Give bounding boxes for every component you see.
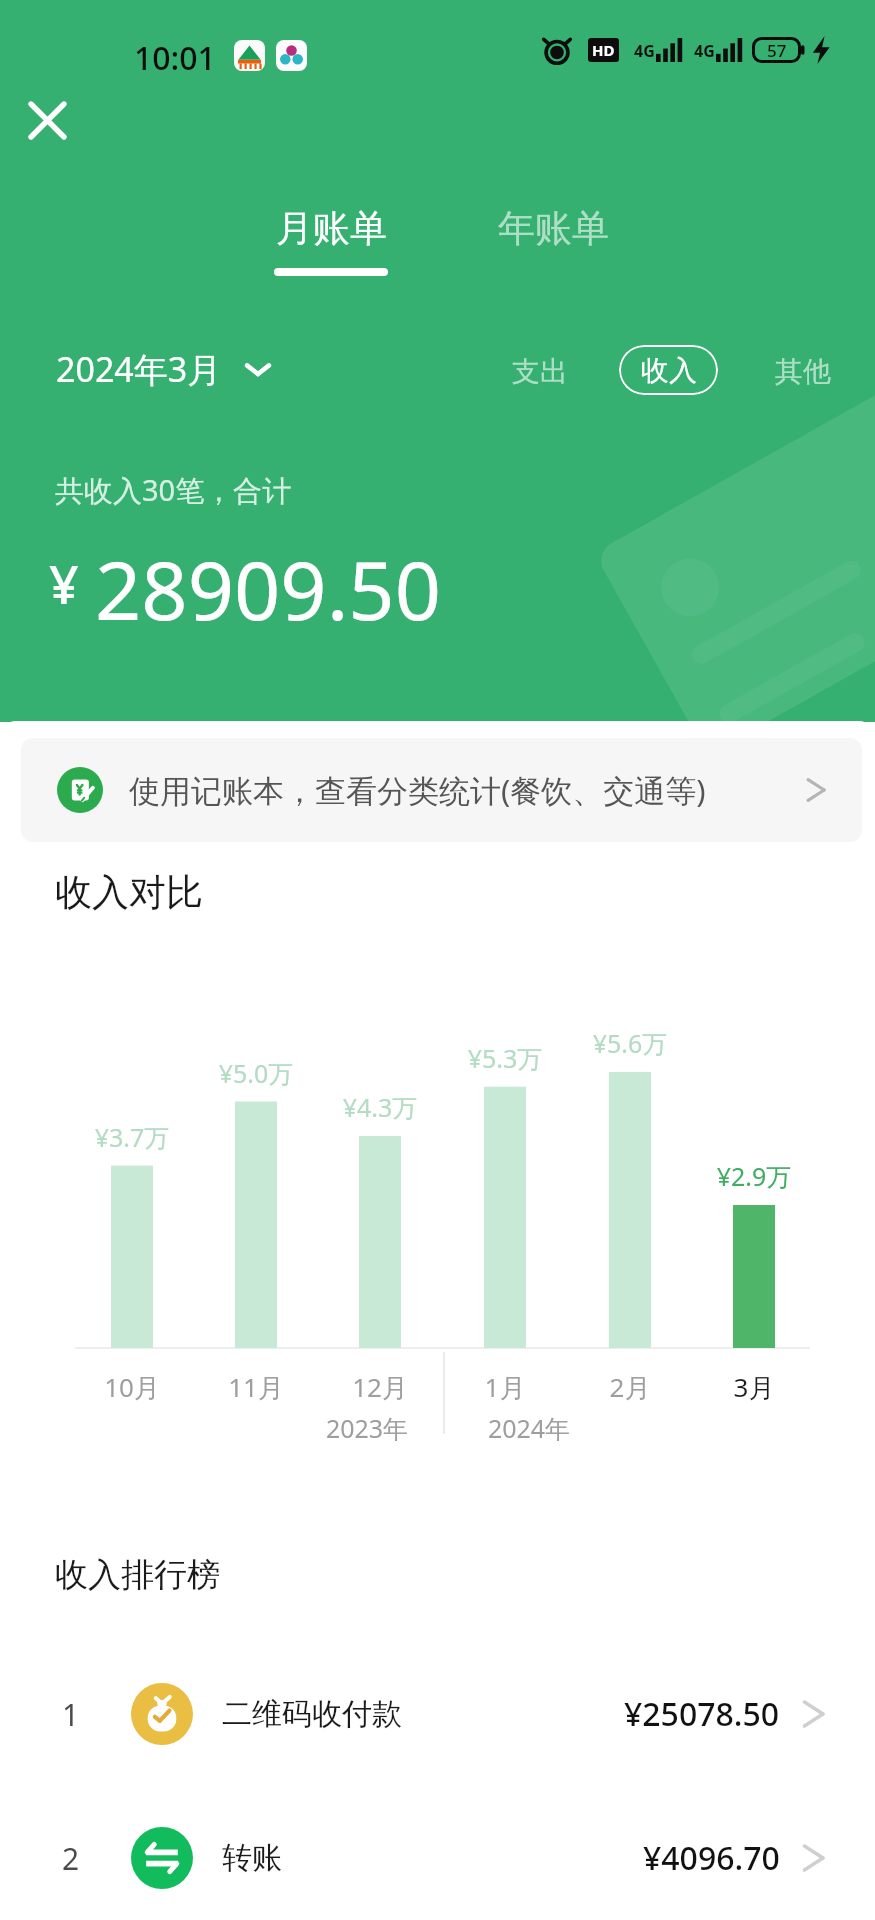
- button[interactable]: 收入: [619, 345, 718, 395]
- staticText: 转账: [222, 1839, 282, 1877]
- staticText: 收入排行榜: [55, 1554, 220, 1596]
- staticText: 支出: [512, 354, 568, 389]
- staticText: 收入: [641, 353, 697, 388]
- staticText: 1: [62, 1694, 80, 1735]
- staticText: 4G: [634, 40, 655, 62]
- staticText: ¥: [49, 548, 79, 619]
- button[interactable]: 月账单: [260, 195, 402, 286]
- staticText: 28909.50: [95, 533, 442, 643]
- staticText: 2024年: [482, 1411, 576, 1445]
- staticText: 57: [767, 39, 787, 62]
- staticText: ¥3.7万: [85, 1120, 179, 1154]
- staticText: 其他: [775, 354, 831, 389]
- staticText: 3月: [707, 1369, 801, 1405]
- button[interactable]: 使用记账本，查看分类统计(餐饮、交通等): [21, 738, 862, 842]
- staticText: 2月: [583, 1369, 677, 1405]
- staticText: 4G: [694, 40, 715, 62]
- staticText: ¥4.3万: [333, 1090, 427, 1124]
- button[interactable]: Close: [13, 86, 81, 154]
- button[interactable]: 年账单: [482, 195, 624, 286]
- staticText: 12月: [333, 1369, 427, 1405]
- button[interactable]: 2: [0, 1810, 875, 1906]
- staticText: 2024年3月: [56, 346, 222, 392]
- staticText: 共收入30笔，合计: [55, 470, 292, 510]
- staticText: 2023年: [320, 1411, 414, 1445]
- staticText: 11月: [209, 1369, 303, 1405]
- staticText: ¥5.3万: [458, 1041, 552, 1075]
- staticText: 使用记账本，查看分类统计(餐饮、交通等): [129, 769, 706, 811]
- staticText: 二维码收付款: [222, 1695, 402, 1733]
- button[interactable]: 1: [0, 1666, 875, 1762]
- button[interactable]: 其他: [755, 340, 851, 403]
- staticText: 收入对比: [55, 869, 203, 916]
- staticText: 10:01: [134, 36, 216, 80]
- staticText: 2: [62, 1838, 80, 1879]
- staticText: 1月: [458, 1369, 552, 1405]
- button[interactable]: 2024年3月: [44, 338, 284, 400]
- staticText: ¥25078.50: [624, 1692, 780, 1736]
- staticText: HD: [592, 40, 615, 60]
- staticText: 年账单: [498, 205, 609, 252]
- staticText: 月账单: [276, 205, 387, 252]
- staticText: ¥2.9万: [707, 1159, 801, 1193]
- staticText: ¥5.6万: [583, 1026, 677, 1060]
- staticText: 10月: [85, 1369, 179, 1405]
- button[interactable]: 支出: [492, 340, 588, 403]
- staticText: ¥5.0万: [209, 1056, 303, 1090]
- staticText: ¥4096.70: [643, 1836, 780, 1880]
